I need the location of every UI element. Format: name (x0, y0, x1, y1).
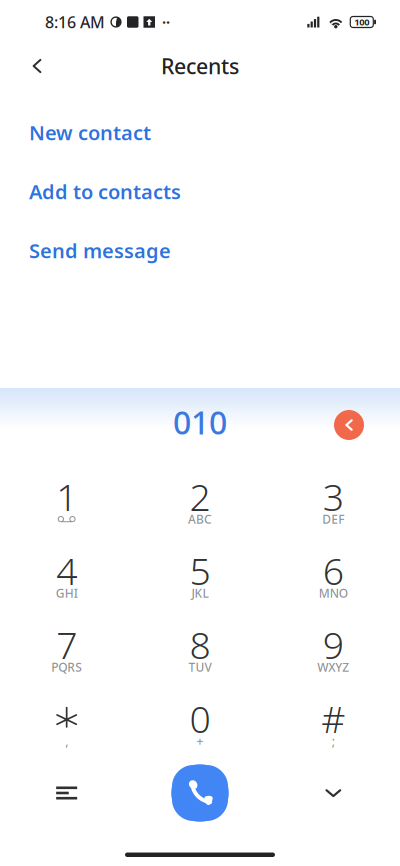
staticText: TUV (188, 659, 211, 675)
staticText: 010 (173, 401, 227, 443)
staticText: 8:16 AM (45, 11, 105, 33)
staticText: 7 (56, 620, 77, 669)
staticText: WXYZ (317, 659, 349, 675)
staticText: DEF (322, 511, 344, 527)
staticText: 6 (323, 546, 344, 595)
staticText: , (65, 733, 68, 749)
staticText: Add to contacts (29, 178, 181, 205)
button[interactable]: New contact (0, 103, 400, 162)
button[interactable]: 7 (0, 620, 133, 680)
staticText: MNO (319, 585, 348, 601)
button[interactable]: Back (0, 44, 60, 88)
staticText: 5 (189, 546, 210, 595)
staticText: JKL (191, 585, 208, 601)
button[interactable]: 8 (133, 620, 267, 680)
staticText: + (196, 733, 203, 749)
staticText: 3 (323, 472, 344, 521)
staticText: 0 (189, 694, 210, 743)
button[interactable]: Delete (327, 403, 371, 447)
button[interactable]: 5 (133, 546, 267, 606)
staticText: 9 (323, 620, 344, 669)
staticText: New contact (29, 119, 151, 146)
button[interactable]: Add to contacts (0, 162, 400, 221)
button[interactable]: 4 (0, 546, 133, 606)
button[interactable]: # (267, 694, 400, 754)
staticText: ; (332, 733, 335, 749)
button[interactable]: 0 (133, 694, 267, 754)
button[interactable]: Call (133, 764, 267, 822)
staticText: 4 (56, 546, 77, 595)
staticText: GHI (56, 585, 78, 601)
staticText: 100 (354, 16, 369, 28)
button[interactable]: 6 (267, 546, 400, 606)
staticText: PQRS (51, 659, 82, 675)
button[interactable]: Hide keypad (267, 764, 400, 822)
staticText: 1 (56, 472, 77, 521)
button[interactable]: 1 (0, 472, 133, 532)
button[interactable]: 2 (133, 472, 267, 532)
button[interactable]: 9 (267, 620, 400, 680)
button[interactable]: Send message (0, 221, 400, 280)
staticText: # (321, 694, 345, 743)
button[interactable]: Keypad options (0, 764, 133, 822)
staticText: 2 (189, 472, 210, 521)
staticText: ABC (188, 511, 212, 527)
staticText: Send message (29, 237, 171, 264)
button[interactable]: , (0, 694, 133, 754)
button[interactable]: 3 (267, 472, 400, 532)
staticText: Recents (161, 52, 239, 80)
staticText: ·· (162, 12, 170, 32)
staticText: 8 (189, 620, 210, 669)
